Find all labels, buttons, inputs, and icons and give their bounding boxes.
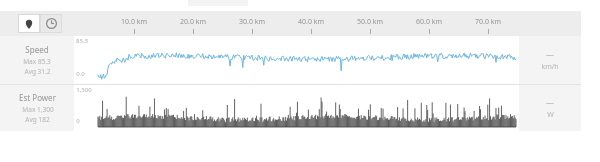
staticText: 10.0 km (121, 17, 147, 27)
button[interactable]: — (519, 85, 581, 131)
staticText: 1,300 (76, 86, 92, 94)
button[interactable]: Est Power (0, 85, 74, 131)
button[interactable]: Distance axis (18, 14, 40, 33)
staticText: 60.0 km (416, 17, 442, 27)
staticText: 85.3 (76, 37, 88, 45)
staticText: Max 1,300 (22, 105, 54, 114)
staticText: — (546, 49, 554, 60)
staticText: Avg 182 (25, 115, 50, 124)
staticText: Max 85.3 (23, 57, 51, 66)
staticText: Est Power (19, 92, 56, 103)
staticText: 50.0 km (357, 17, 383, 27)
staticText: km/h (541, 62, 559, 72)
button[interactable]: — (519, 36, 581, 84)
staticText: Avg 31.2 (24, 67, 51, 76)
staticText: 40.0 km (298, 17, 324, 27)
staticText: 0 (76, 117, 80, 125)
staticText: 20.0 km (180, 17, 206, 27)
staticText: — (546, 97, 554, 108)
staticText: 30.0 km (239, 17, 265, 27)
staticText: 70.0 km (475, 17, 501, 27)
staticText: 0.0 (76, 70, 85, 78)
staticText: W (547, 110, 554, 120)
button[interactable]: Time axis (40, 14, 62, 33)
staticText: Speed (25, 44, 49, 55)
button[interactable]: Speed (0, 36, 74, 84)
